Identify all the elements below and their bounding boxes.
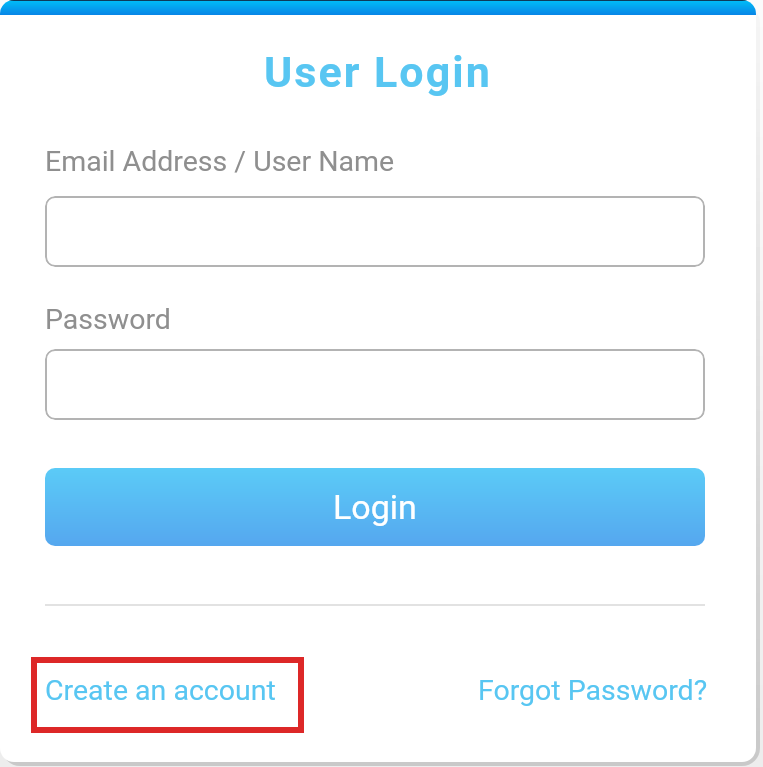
button[interactable]: Create an account — [45, 674, 276, 707]
button[interactable]: Login — [45, 468, 705, 546]
staticText: User Login — [264, 47, 492, 97]
staticText: Login — [333, 487, 417, 527]
button[interactable] — [45, 349, 705, 420]
button[interactable]: Forgot Password? — [478, 674, 708, 707]
staticText: Email Address / User Name — [45, 145, 395, 178]
button[interactable] — [45, 196, 705, 267]
staticText: Forgot Password? — [478, 674, 708, 707]
staticText: Create an account — [45, 674, 276, 707]
staticText: Password — [45, 303, 171, 336]
